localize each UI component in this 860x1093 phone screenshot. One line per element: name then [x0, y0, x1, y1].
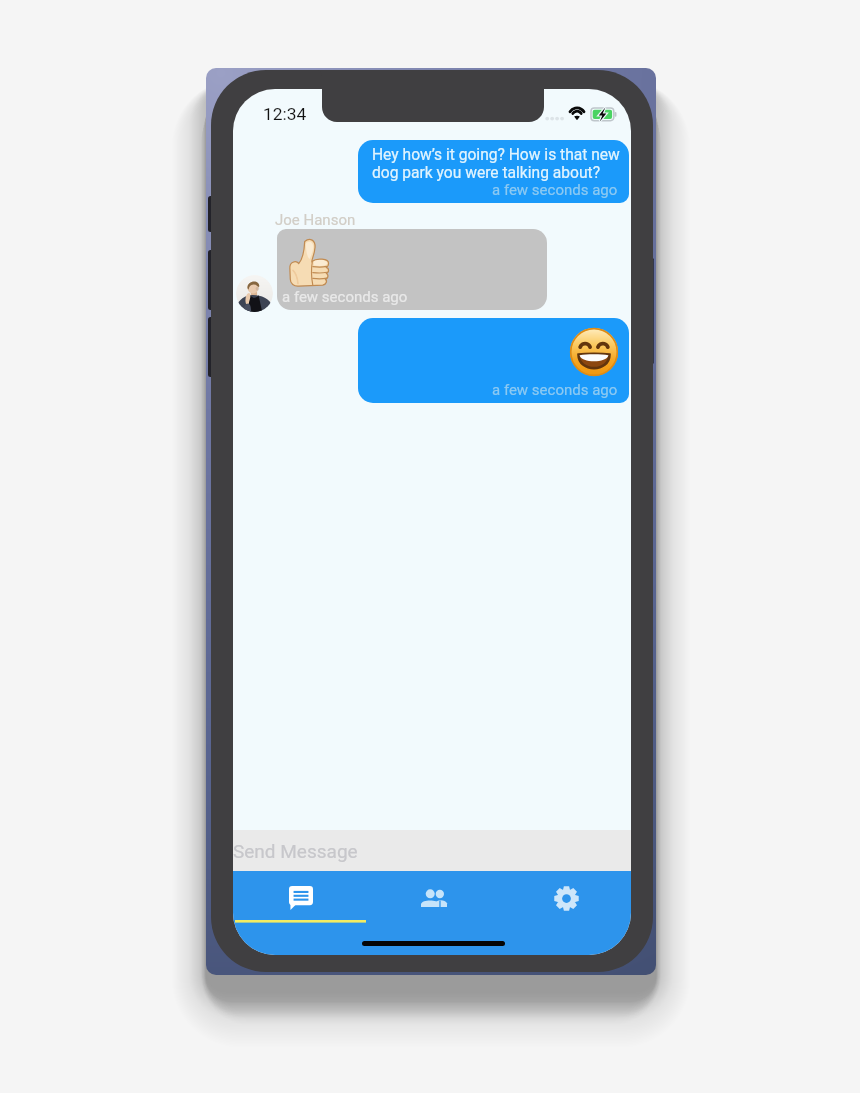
button[interactable]: a few seconds ago: [358, 318, 629, 403]
button[interactable]: Messages: [233, 871, 365, 955]
button[interactable]: Send Message: [233, 830, 631, 872]
staticText: a few seconds ago: [492, 181, 618, 199]
staticText: a few seconds ago: [492, 381, 618, 399]
button[interactable]: Contacts: [365, 871, 498, 955]
staticText: 12:34: [263, 104, 307, 124]
staticText: Hey how’s it going? How is that new dog …: [372, 146, 626, 182]
staticText: Send Message: [233, 840, 358, 862]
staticText: Joe Hanson: [275, 211, 356, 229]
staticText: a few seconds ago: [282, 288, 408, 306]
button[interactable]: Settings: [498, 871, 631, 955]
button[interactable]: Hey how’s it going? How is that new dog …: [358, 140, 629, 203]
button[interactable]: a few seconds ago: [277, 229, 547, 310]
